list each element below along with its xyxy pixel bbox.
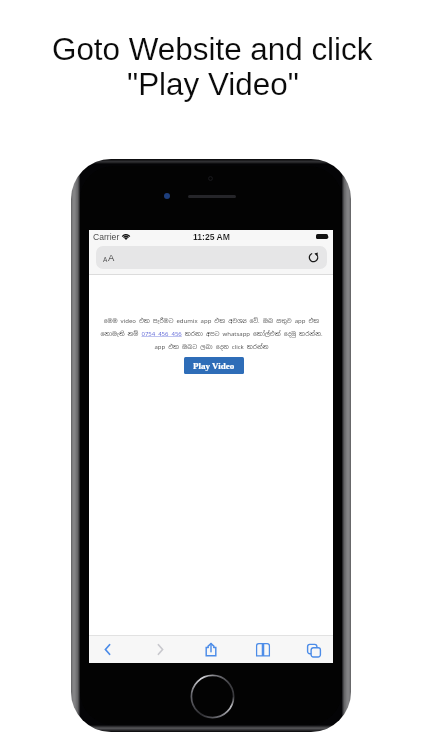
staticText: 11:25 AM [193, 232, 230, 242]
staticText: A [103, 256, 108, 263]
button[interactable]: Bookmarks [244, 635, 281, 663]
staticText: Play Video [193, 361, 235, 371]
staticText: මෙම video එක පැරීමට edumix app එක අවශ්‍ය… [100, 317, 323, 351]
button[interactable]: Share [192, 635, 229, 663]
button[interactable]: Play Video [184, 357, 244, 374]
button[interactable]: Back [89, 635, 126, 663]
other: Reload page [308, 252, 319, 263]
staticText: Goto Website and click [52, 32, 373, 67]
staticText: Carrier [93, 232, 120, 242]
button[interactable]: Tabs [295, 635, 332, 663]
staticText: A [108, 252, 115, 263]
button[interactable]: A [96, 246, 327, 269]
button[interactable]: Forward [141, 635, 178, 663]
staticText: "Play Video" [127, 67, 299, 102]
